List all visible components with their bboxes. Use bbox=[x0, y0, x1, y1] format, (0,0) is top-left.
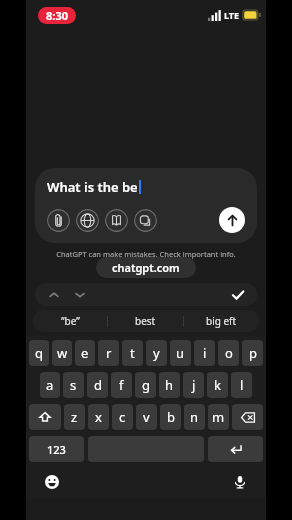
staticText: f bbox=[119, 376, 124, 394]
staticText: m bbox=[212, 408, 225, 426]
button[interactable]: d bbox=[87, 372, 108, 398]
staticText: w bbox=[57, 344, 68, 362]
button[interactable]: s bbox=[63, 372, 84, 398]
button[interactable]: x bbox=[88, 404, 109, 430]
button[interactable]: “be” bbox=[33, 310, 107, 332]
staticText: LTE bbox=[224, 9, 240, 21]
staticText: e bbox=[81, 344, 89, 362]
staticText: h bbox=[165, 376, 174, 394]
button[interactable]: l bbox=[231, 372, 252, 398]
button[interactable]: 123 bbox=[29, 436, 84, 462]
button[interactable]: w bbox=[52, 340, 72, 366]
button[interactable]: b bbox=[160, 404, 181, 430]
button[interactable]: j bbox=[183, 372, 204, 398]
staticText: t bbox=[130, 344, 135, 362]
staticText: c bbox=[119, 408, 126, 426]
button[interactable]: c bbox=[112, 404, 133, 430]
button[interactable]: big eft bbox=[184, 310, 259, 332]
button[interactable]: n bbox=[184, 404, 205, 430]
staticText: k bbox=[214, 376, 221, 394]
button[interactable]: e bbox=[75, 340, 95, 366]
button[interactable]: More tools bbox=[134, 209, 157, 232]
button[interactable]: r bbox=[98, 340, 119, 366]
staticText: d bbox=[94, 376, 102, 394]
staticText: ChatGPT can make mistakes. Check importa… bbox=[56, 249, 236, 259]
button[interactable]: Emoji bbox=[40, 470, 64, 494]
button[interactable]: Done bbox=[229, 286, 247, 304]
button[interactable]: i bbox=[194, 340, 215, 366]
staticText: u bbox=[176, 344, 185, 362]
staticText: chatgpt.com bbox=[112, 260, 180, 275]
staticText: 8:30 bbox=[46, 8, 68, 23]
staticText: i bbox=[203, 344, 207, 362]
staticText: s bbox=[70, 376, 77, 394]
button[interactable]: a bbox=[40, 372, 60, 398]
button[interactable]: Next field bbox=[71, 286, 89, 304]
button[interactable]: o bbox=[218, 340, 239, 366]
staticText: best bbox=[135, 314, 156, 328]
staticText: v bbox=[143, 408, 150, 426]
button[interactable]: Attach file bbox=[47, 209, 70, 232]
button[interactable]: h bbox=[159, 372, 180, 398]
button[interactable]: best bbox=[108, 310, 183, 332]
button[interactable]: u bbox=[170, 340, 191, 366]
button[interactable]: p bbox=[242, 340, 263, 366]
button[interactable]: Previous field bbox=[45, 286, 63, 304]
button[interactable]: Voice input bbox=[228, 470, 252, 494]
button[interactable]: m bbox=[208, 404, 229, 430]
staticText: g bbox=[142, 376, 150, 394]
staticText: What is the be bbox=[47, 178, 138, 196]
staticText: x bbox=[95, 408, 102, 426]
button[interactable]: q bbox=[29, 340, 49, 366]
staticText: r bbox=[106, 344, 112, 362]
staticText: 123 bbox=[47, 442, 66, 457]
button[interactable]: Backspace bbox=[232, 404, 263, 430]
staticText: p bbox=[249, 344, 257, 362]
button[interactable]: z bbox=[64, 404, 85, 430]
staticText: big eft bbox=[206, 314, 237, 328]
button[interactable]: Shift bbox=[29, 404, 61, 430]
button[interactable]: y bbox=[146, 340, 167, 366]
button[interactable]: k bbox=[207, 372, 228, 398]
button[interactable]: Search the web bbox=[76, 209, 99, 232]
staticText: z bbox=[71, 408, 78, 426]
button[interactable]: f bbox=[111, 372, 132, 398]
button[interactable]: v bbox=[136, 404, 157, 430]
staticText: a bbox=[46, 376, 54, 394]
staticText: l bbox=[240, 376, 244, 394]
button[interactable]: Enter bbox=[208, 436, 263, 462]
button[interactable]: chatgpt.com bbox=[96, 257, 196, 278]
button[interactable]: Send bbox=[219, 207, 245, 233]
button[interactable]: Study mode bbox=[105, 209, 128, 232]
staticText: n bbox=[190, 408, 199, 426]
staticText: q bbox=[35, 344, 43, 362]
button[interactable]: t bbox=[122, 340, 143, 366]
staticText: j bbox=[192, 376, 196, 394]
staticText: o bbox=[225, 344, 233, 362]
staticText: y bbox=[153, 344, 160, 362]
staticText: b bbox=[167, 408, 175, 426]
button[interactable]: g bbox=[135, 372, 156, 398]
staticText: “be” bbox=[61, 314, 80, 328]
